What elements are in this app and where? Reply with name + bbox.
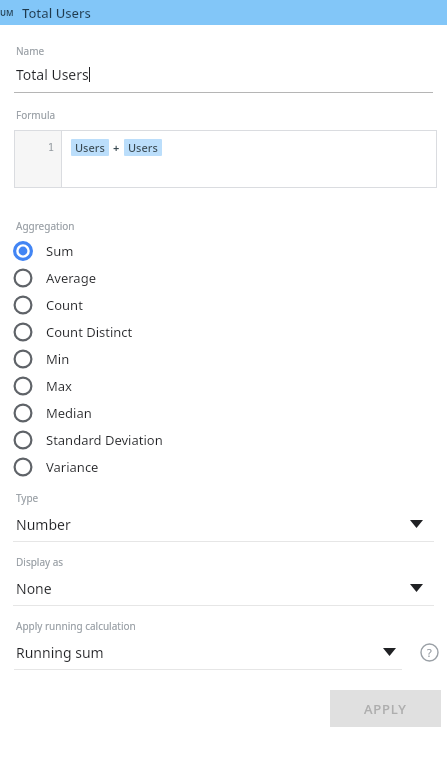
staticText: Total Users: [22, 4, 91, 22]
staticText: Apply running calculation: [16, 619, 136, 633]
staticText: None: [16, 579, 52, 598]
staticText: Average: [46, 269, 96, 287]
staticText: Number: [16, 515, 71, 534]
staticText: Name: [16, 44, 45, 58]
button[interactable]: Number: [0, 514, 447, 534]
button[interactable]: APPLY: [330, 690, 441, 727]
staticText: 1: [48, 140, 54, 154]
staticText: Max: [46, 377, 72, 395]
button[interactable]: 1: [14, 130, 437, 188]
staticText: +: [113, 140, 120, 155]
button[interactable]: UM: [0, 0, 447, 25]
staticText: Users: [75, 140, 105, 155]
staticText: Users: [128, 140, 158, 155]
button[interactable]: Max: [0, 372, 447, 399]
button[interactable]: Sum: [0, 237, 447, 264]
button[interactable]: Count: [0, 291, 447, 318]
staticText: Count: [46, 296, 83, 314]
staticText: Total Users: [16, 65, 89, 84]
staticText: APPLY: [364, 700, 407, 718]
button[interactable]: Count Distinct: [0, 318, 447, 345]
staticText: Display as: [16, 555, 64, 569]
staticText: ?: [427, 645, 432, 660]
button[interactable]: Standard Deviation: [0, 426, 447, 453]
button[interactable]: Median: [0, 399, 447, 426]
staticText: UM: [0, 7, 14, 18]
staticText: Variance: [46, 458, 99, 476]
staticText: Type: [16, 491, 39, 505]
staticText: Min: [46, 350, 70, 368]
button[interactable]: None: [0, 578, 447, 598]
button[interactable]: Total Users: [0, 65, 447, 84]
button[interactable]: Running sum: [0, 642, 447, 662]
button[interactable]: Min: [0, 345, 447, 372]
staticText: Formula: [16, 108, 56, 122]
staticText: Count Distinct: [46, 323, 133, 341]
staticText: Standard Deviation: [46, 431, 163, 449]
staticText: Aggregation: [16, 219, 75, 233]
button[interactable]: Average: [0, 264, 447, 291]
button[interactable]: Help: [418, 642, 440, 662]
staticText: Sum: [46, 242, 74, 260]
staticText: Running sum: [16, 643, 104, 662]
button[interactable]: Variance: [0, 453, 447, 480]
staticText: Median: [46, 404, 92, 422]
